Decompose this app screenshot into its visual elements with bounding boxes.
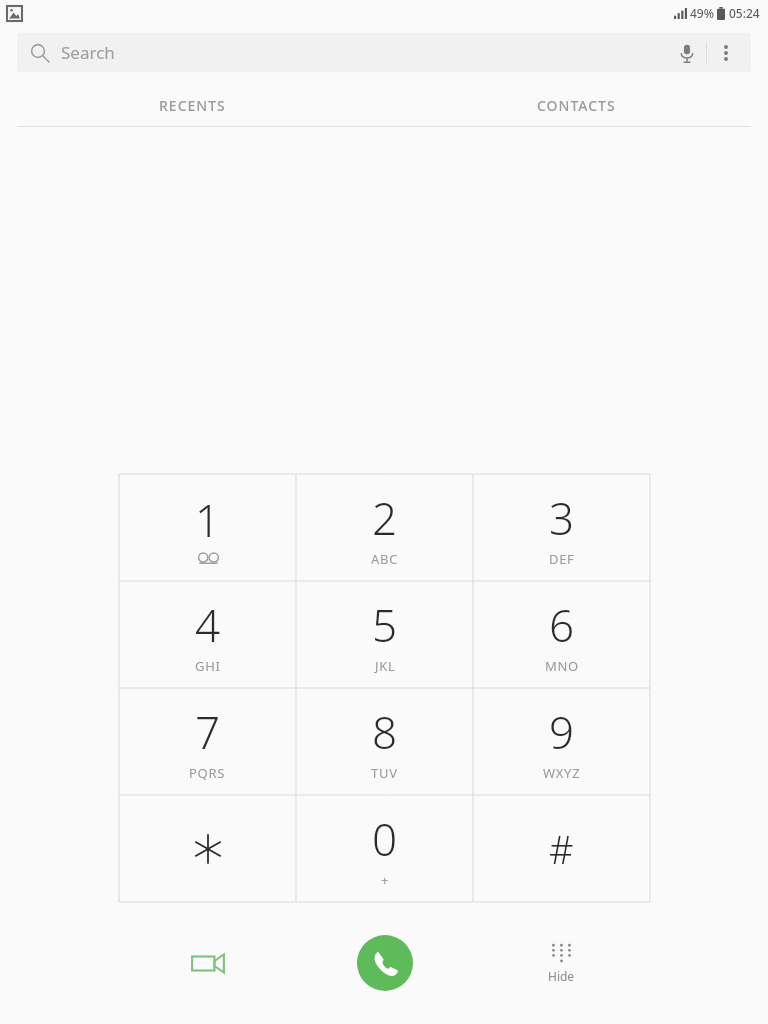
button[interactable]: 4 <box>119 581 296 688</box>
staticText: Search <box>61 41 115 64</box>
staticText: 49% <box>690 5 714 21</box>
button[interactable]: Hide keypad <box>473 926 650 1000</box>
staticText: MNO <box>545 657 579 675</box>
button[interactable]: # <box>473 795 650 902</box>
button[interactable] <box>119 795 296 902</box>
staticText: 7 <box>195 702 221 762</box>
staticText: + <box>381 871 390 889</box>
button[interactable]: 3 <box>473 474 650 581</box>
staticText: TUV <box>371 764 398 782</box>
button[interactable]: 2 <box>296 474 473 581</box>
staticText: 2 <box>372 488 398 548</box>
staticText: 8 <box>372 702 398 762</box>
staticText: CONTACTS <box>537 96 616 115</box>
button[interactable]: 9 <box>473 688 650 795</box>
staticText: # <box>549 823 574 875</box>
button[interactable]: Call <box>357 935 413 991</box>
button[interactable]: Search <box>17 33 751 72</box>
staticText: Hide <box>548 968 575 984</box>
staticText: PQRS <box>189 764 226 782</box>
staticText: 1 <box>195 490 221 550</box>
button[interactable]: 1 <box>119 474 296 581</box>
staticText: RECENTS <box>159 96 226 115</box>
staticText: 4 <box>195 595 221 655</box>
staticText: WXYZ <box>543 764 581 782</box>
staticText: GHI <box>195 657 221 675</box>
button[interactable]: More options <box>707 34 745 72</box>
button[interactable]: Video call <box>119 926 296 1000</box>
button[interactable]: 8 <box>296 688 473 795</box>
button[interactable]: CONTACTS <box>384 84 768 126</box>
button[interactable]: Voice search <box>668 34 706 72</box>
staticText: 5 <box>372 595 398 655</box>
button[interactable]: 0 <box>296 795 473 902</box>
staticText: ABC <box>371 550 399 568</box>
staticText: 3 <box>549 488 575 548</box>
button[interactable]: 7 <box>119 688 296 795</box>
staticText: 6 <box>549 595 575 655</box>
staticText: JKL <box>375 657 396 675</box>
staticText: 0 <box>372 809 398 869</box>
staticText: 05:24 <box>729 5 760 21</box>
button[interactable]: RECENTS <box>0 84 384 126</box>
staticText: DEF <box>549 550 575 568</box>
button[interactable]: 5 <box>296 581 473 688</box>
button[interactable]: 6 <box>473 581 650 688</box>
staticText: 9 <box>549 702 575 762</box>
